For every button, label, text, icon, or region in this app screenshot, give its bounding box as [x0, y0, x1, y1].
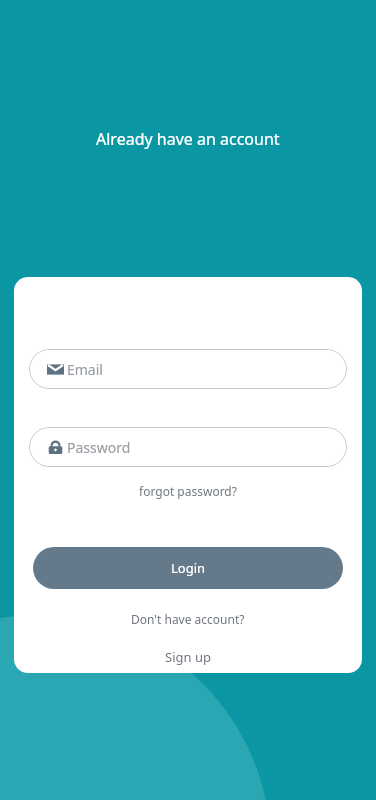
staticText: Login — [171, 559, 206, 577]
staticText: Email — [67, 360, 103, 379]
staticText: Don't have account? — [131, 611, 245, 627]
button[interactable]: forgot password? — [131, 479, 245, 503]
staticText: forgot password? — [139, 483, 237, 499]
staticText: Password — [67, 438, 131, 457]
button[interactable]: Sign up — [155, 645, 221, 669]
button[interactable]: Login — [33, 547, 343, 589]
button[interactable]: Email — [29, 349, 347, 389]
staticText: Already have an account — [96, 128, 280, 150]
button[interactable]: Password — [29, 427, 347, 467]
staticText: Sign up — [165, 648, 211, 666]
